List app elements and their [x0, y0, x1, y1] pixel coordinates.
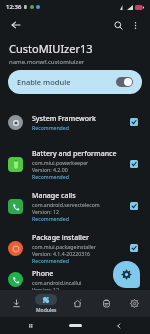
staticText: name.monwf.customiuizer [9, 58, 85, 66]
button[interactable]: System Framework [0, 101, 150, 143]
button[interactable]: Back [110, 317, 128, 334]
button[interactable]: Search [109, 16, 127, 34]
button[interactable]: Enable module [8, 70, 142, 94]
button[interactable]: Logs [93, 291, 119, 316]
button[interactable]: Battery and performance [0, 143, 150, 185]
staticText: Recommended [32, 215, 69, 222]
staticText: Recommended [32, 124, 69, 131]
staticText: Version: 12 [32, 286, 59, 290]
staticText: Battery and performance [32, 149, 117, 159]
button[interactable]: Toggle Manage calls [126, 198, 142, 214]
button[interactable]: More options [127, 17, 143, 33]
staticText: Enable module [17, 77, 71, 87]
button[interactable]: Phone [0, 269, 150, 290]
button[interactable]: Downloads [3, 291, 29, 316]
button[interactable]: Home [62, 317, 88, 334]
button[interactable]: Toggle Phone [126, 272, 142, 288]
staticText: CustoMIUIzer13 [9, 41, 93, 56]
staticText: Version: 12 [32, 208, 59, 215]
staticText: System Framework [32, 114, 96, 124]
staticText: Recommended [32, 257, 69, 264]
button[interactable]: Back [7, 16, 25, 34]
button[interactable]: Toggle System Framework [126, 114, 142, 130]
button[interactable]: Package installer [0, 227, 150, 269]
staticText: 12:36 [6, 3, 22, 11]
button[interactable]: Settings [113, 261, 140, 288]
staticText: com.android.server.telecom [32, 201, 100, 208]
button[interactable]: Toggle Battery and performance [126, 156, 142, 172]
staticText: Manage calls [32, 191, 76, 201]
staticText: Recommended [32, 173, 69, 180]
button[interactable]: Manage calls [0, 185, 150, 227]
staticText: com.miui.packageinstaller [32, 243, 96, 250]
staticText: Phone [32, 269, 54, 279]
staticText: Version: 4.2.00 [32, 166, 68, 173]
button[interactable]: Settings [121, 291, 147, 316]
staticText: Version: 4.1.4-20220316 [32, 250, 91, 257]
staticText: com.android.incallui [32, 279, 82, 286]
button[interactable]: Recents [22, 317, 40, 334]
staticText: Modules [36, 307, 57, 314]
button[interactable]: Toggle Package installer [126, 240, 142, 256]
staticText: com.miui.powerkeeper [32, 159, 89, 166]
button[interactable]: Apps [64, 291, 90, 316]
staticText: Package installer [32, 233, 89, 243]
button[interactable]: Modules [31, 294, 61, 314]
